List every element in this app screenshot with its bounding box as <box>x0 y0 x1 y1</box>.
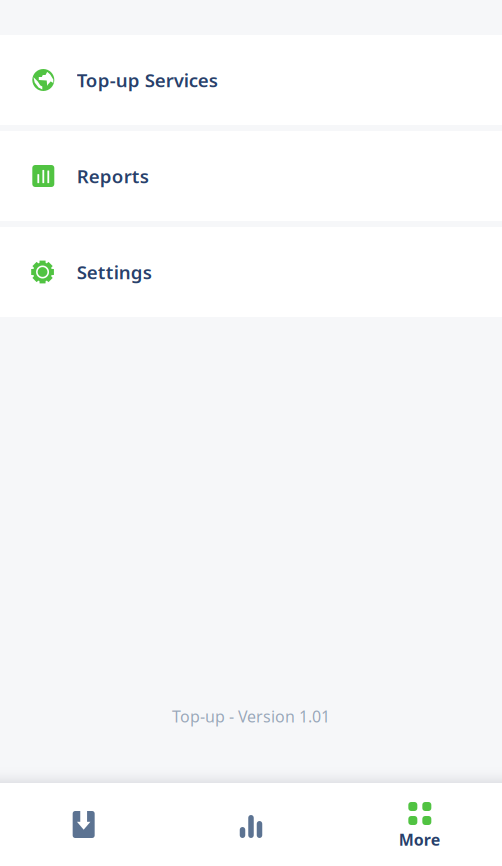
staticText: More <box>399 829 441 850</box>
staticText: Top-up - Version 1.01 <box>172 706 330 727</box>
staticText: Settings <box>77 260 152 284</box>
button[interactable]: More <box>335 783 502 866</box>
staticText: Top-up Services <box>77 68 218 92</box>
button[interactable]: Top-up Services <box>0 35 502 125</box>
button[interactable]: Settings <box>0 227 502 317</box>
staticText: Reports <box>77 164 149 188</box>
button[interactable]: Top-up <box>0 783 167 866</box>
button[interactable]: Reports <box>0 131 502 221</box>
button[interactable]: Reports <box>167 783 335 866</box>
